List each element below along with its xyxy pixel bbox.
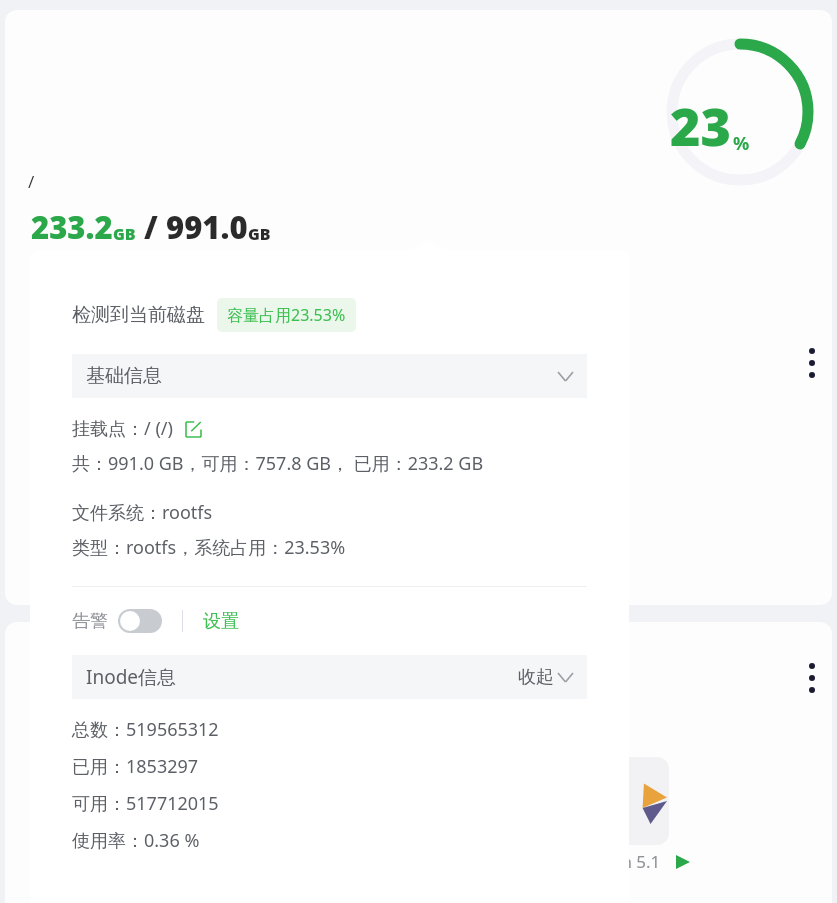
staticText: 检测到当前磁盘 [72,303,205,327]
staticText: 告警 [72,610,108,633]
button[interactable]: More options [5,10,832,605]
staticText: / [28,170,35,193]
staticText: 991.0 [166,206,248,248]
staticText: GB [113,223,136,245]
button[interactable]: More options [800,660,824,696]
staticText: 使用率：0.36 % [72,828,200,853]
staticText: 类型：rootfs，系统占用：23.53% [72,535,346,560]
button[interactable]: Inode信息 [86,655,573,699]
button[interactable]: 容量占用23.53% [227,304,346,326]
staticText: Inode信息 [86,664,177,690]
staticText: GB [248,223,271,245]
staticText: 23 [670,90,731,161]
staticText: % [733,131,750,156]
staticText: 收起 [518,666,554,689]
staticText: 基础信息 [86,364,162,388]
staticText: in 5.1 [617,850,661,873]
staticText: 已用：1853297 [72,754,199,779]
button[interactable]: Play [673,852,693,872]
staticText: 233.2 [31,206,113,248]
button[interactable]: Alarm toggle [118,609,162,633]
staticText: 可用：517712015 [72,791,219,816]
staticText: 总数：519565312 [72,717,219,742]
staticText: 共：991.0 GB，可用：757.8 GB， 已用：233.2 GB [72,451,484,476]
staticText: 设置 [203,610,239,633]
button[interactable]: 设置 [203,610,239,633]
button[interactable]: More options [5,622,832,903]
button[interactable]: More options [800,345,824,381]
button[interactable]: 基础信息 [86,354,573,398]
staticText: 容量占用23.53% [227,304,346,326]
button[interactable]: Edit mount point [183,419,203,439]
staticText: 挂载点：/ (/) [72,416,173,441]
staticText: / [144,206,158,248]
staticText: 文件系统：rootfs [72,500,213,525]
